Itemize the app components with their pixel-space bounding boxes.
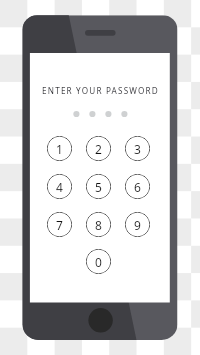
button[interactable]: Key 8 [86, 212, 111, 237]
button[interactable]: Key 3 [125, 136, 150, 161]
button[interactable]: Key 7 [47, 212, 72, 237]
button[interactable]: Key 0 [86, 249, 111, 274]
button[interactable]: Key 1 [47, 136, 72, 161]
button[interactable]: Key 5 [86, 174, 111, 199]
button[interactable]: Key 2 [86, 136, 111, 161]
button[interactable]: Key 6 [125, 174, 150, 199]
button[interactable]: Key 9 [125, 212, 150, 237]
button[interactable]: Key 4 [47, 174, 72, 199]
